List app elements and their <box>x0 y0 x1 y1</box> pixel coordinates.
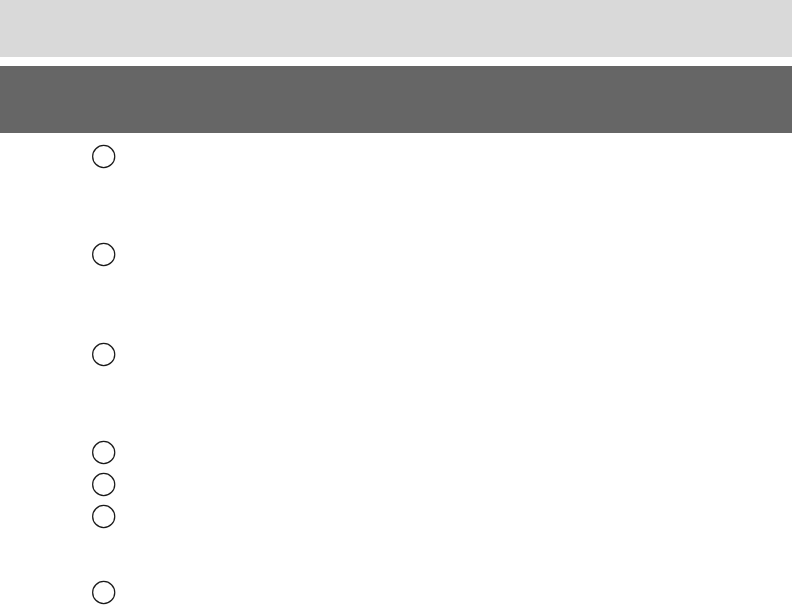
button[interactable]: Option 5 <box>0 468 792 500</box>
button[interactable]: Option 7 <box>0 576 792 605</box>
button[interactable]: Option 1 <box>0 132 792 180</box>
button[interactable]: Option 3 <box>0 306 792 402</box>
button[interactable]: Option 6 <box>0 500 792 532</box>
button[interactable]: Option 4 <box>0 436 792 468</box>
button[interactable]: Option 2 <box>0 206 792 302</box>
